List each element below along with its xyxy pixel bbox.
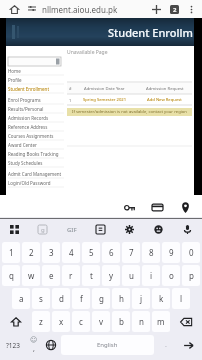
button[interactable]: j bbox=[132, 288, 150, 309]
button[interactable]: x bbox=[52, 311, 70, 332]
button[interactable]: 0 bbox=[182, 242, 200, 263]
button[interactable]: s bbox=[32, 288, 50, 309]
button[interactable]: v bbox=[92, 311, 110, 332]
staticText: Unavailable Page bbox=[67, 49, 108, 56]
button[interactable]: 1 bbox=[2, 242, 20, 263]
button[interactable]: 9 bbox=[162, 242, 180, 263]
button[interactable]: 3 bbox=[42, 242, 60, 263]
button[interactable]: Admit Card Management bbox=[8, 170, 64, 178]
button[interactable]: Home bbox=[6, 1, 22, 17]
button[interactable]: d bbox=[52, 288, 70, 309]
staticText: i bbox=[150, 270, 153, 281]
button[interactable]: 4 bbox=[62, 242, 80, 263]
button[interactable]: Reference Address bbox=[8, 123, 64, 131]
button[interactable]: w bbox=[22, 265, 40, 286]
staticText: c bbox=[79, 316, 83, 327]
button[interactable]: Courses Assignments bbox=[8, 132, 64, 140]
button[interactable]: n bbox=[132, 311, 150, 332]
button[interactable]: Student Enrollment bbox=[8, 85, 64, 93]
staticText: b bbox=[119, 316, 124, 327]
button[interactable]: q bbox=[2, 265, 20, 286]
staticText: . bbox=[165, 340, 167, 350]
button[interactable]: GIF bbox=[57, 219, 86, 240]
staticText: Profile bbox=[8, 77, 22, 83]
button[interactable]: m bbox=[152, 311, 170, 332]
button[interactable]: 8 bbox=[142, 242, 160, 263]
button[interactable]: 2 bbox=[22, 242, 40, 263]
button[interactable]: e bbox=[42, 265, 60, 286]
button[interactable]: Home bbox=[8, 67, 64, 75]
staticText: Admission Request bbox=[146, 86, 184, 92]
staticText: If semester/admission is not available, … bbox=[72, 109, 187, 115]
button[interactable]: Shift bbox=[2, 311, 30, 332]
staticText: 0 bbox=[189, 247, 194, 258]
button[interactable]: Settings bbox=[115, 219, 144, 240]
button[interactable]: Login/Old Password bbox=[8, 179, 64, 187]
button[interactable]: Backspace bbox=[172, 311, 200, 332]
staticText: # bbox=[69, 86, 72, 91]
button[interactable]: Profile bbox=[8, 76, 64, 84]
staticText: ☺ bbox=[30, 336, 38, 344]
staticText: 1 bbox=[69, 98, 72, 103]
staticText: t bbox=[90, 270, 93, 281]
staticText: Student Enrollm bbox=[108, 25, 193, 40]
staticText: g bbox=[41, 226, 45, 234]
button[interactable]: Reading Books Tracking bbox=[8, 150, 64, 158]
staticText: 2 bbox=[173, 6, 177, 14]
button[interactable]: English bbox=[61, 335, 154, 355]
button[interactable]: Emoji bbox=[144, 219, 173, 240]
button[interactable]: y bbox=[102, 265, 120, 286]
button[interactable]: 6 bbox=[102, 242, 120, 263]
staticText: a bbox=[19, 293, 24, 304]
button[interactable]: Next bbox=[176, 334, 200, 356]
button[interactable]: nllment.aiou.edu.pk bbox=[42, 4, 147, 15]
button[interactable]: 7 bbox=[122, 242, 140, 263]
button[interactable]: Award Center bbox=[8, 141, 64, 149]
button[interactable] bbox=[8, 57, 61, 66]
button[interactable]: o bbox=[162, 265, 180, 286]
button[interactable]: Passwords bbox=[118, 196, 140, 218]
staticText: v bbox=[99, 316, 104, 327]
button[interactable]: a bbox=[12, 288, 30, 309]
button[interactable]: c bbox=[72, 311, 90, 332]
button[interactable]: b bbox=[112, 311, 130, 332]
button[interactable]: Results/Personal Information bbox=[8, 105, 64, 113]
button[interactable]: i bbox=[142, 265, 160, 286]
button[interactable]: z bbox=[32, 311, 50, 332]
button[interactable]: h bbox=[112, 288, 130, 309]
button[interactable]: Voice input bbox=[173, 219, 202, 240]
staticText: Reading Books Tracking bbox=[8, 151, 59, 157]
button[interactable]: g bbox=[92, 288, 110, 309]
button[interactable]: Addresses bbox=[174, 196, 196, 218]
button[interactable]: t bbox=[82, 265, 100, 286]
button[interactable]: Clipboard bbox=[86, 219, 115, 240]
staticText: f bbox=[80, 293, 83, 304]
button[interactable]: Change language bbox=[43, 334, 58, 356]
button[interactable]: ?123 bbox=[2, 334, 24, 356]
button[interactable]: Emoji bbox=[26, 334, 41, 356]
button[interactable]: Payment methods bbox=[146, 196, 168, 218]
button[interactable]: 1 bbox=[67, 95, 192, 105]
button[interactable]: k bbox=[152, 288, 170, 309]
button[interactable]: Site information bbox=[25, 2, 39, 16]
button[interactable]: New tab bbox=[147, 0, 165, 18]
button[interactable]: f bbox=[72, 288, 90, 309]
staticText: Admission Date Year bbox=[84, 86, 125, 92]
button[interactable]: r bbox=[62, 265, 80, 286]
button[interactable]: Switch tabs bbox=[165, 0, 183, 18]
button[interactable]: 5 bbox=[82, 242, 100, 263]
staticText: h bbox=[119, 293, 124, 304]
staticText: z bbox=[39, 316, 43, 327]
button[interactable]: Study Schedules bbox=[8, 159, 64, 167]
staticText: d bbox=[59, 293, 64, 304]
button[interactable]: More options bbox=[183, 1, 199, 17]
staticText: m bbox=[157, 316, 165, 327]
button[interactable]: Search bbox=[28, 219, 57, 240]
button[interactable]: p bbox=[182, 265, 200, 286]
button[interactable]: Admission Records bbox=[8, 114, 64, 122]
button[interactable]: Enrol Programs bbox=[8, 96, 64, 104]
button[interactable]: l bbox=[172, 288, 190, 309]
button[interactable]: u bbox=[122, 265, 140, 286]
button[interactable]: Toolbar bbox=[0, 219, 28, 240]
